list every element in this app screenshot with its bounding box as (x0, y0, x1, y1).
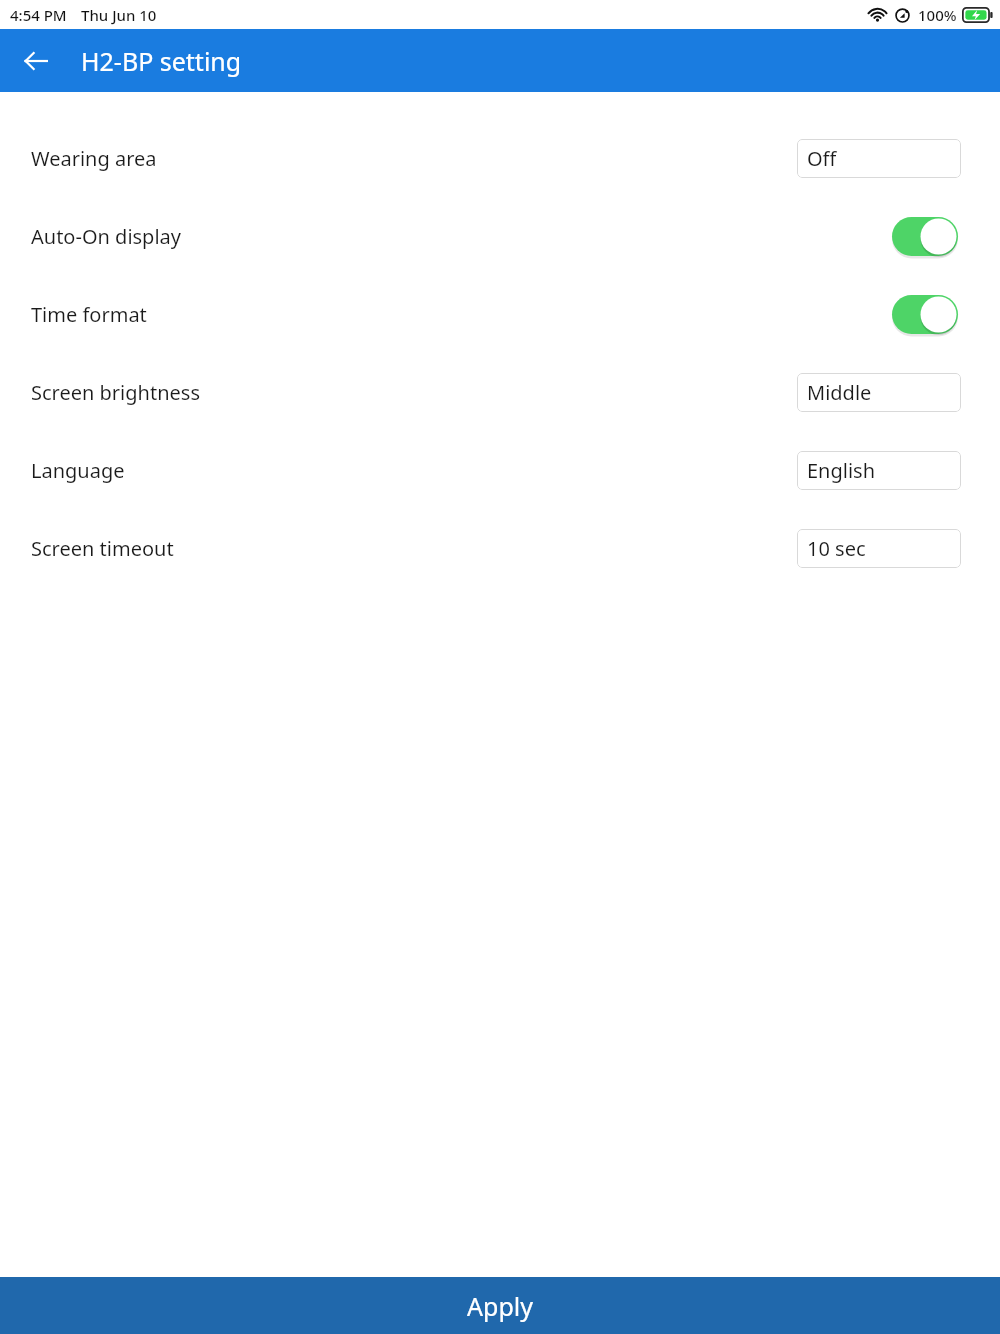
staticText: Wearing area (31, 145, 157, 172)
staticText: 4:54 PM (10, 5, 67, 25)
button[interactable]: Middle (797, 373, 961, 412)
button[interactable]: Off (797, 139, 961, 178)
staticText: H2-BP setting (81, 44, 242, 78)
button[interactable]: Screen brightness (0, 353, 1000, 431)
staticText: Off (807, 145, 837, 172)
staticText: Language (31, 457, 125, 484)
button[interactable]: Apply (0, 1277, 1000, 1334)
button[interactable]: Time format toggle, on (892, 295, 958, 334)
staticText: Middle (807, 379, 872, 406)
staticText: Apply (467, 1289, 533, 1323)
button[interactable]: Wearing area (0, 119, 1000, 197)
button[interactable]: Language (0, 431, 1000, 509)
staticText: Time format (31, 301, 147, 328)
staticText: Auto-On display (31, 223, 181, 250)
button[interactable]: Auto-On display (0, 197, 1000, 275)
staticText: Screen brightness (31, 379, 200, 406)
button[interactable]: English (797, 451, 961, 490)
button[interactable]: Auto-On display toggle, on (892, 217, 958, 256)
staticText: Screen timeout (31, 535, 174, 562)
button[interactable]: Time format (0, 275, 1000, 353)
staticText: 10 sec (807, 535, 866, 562)
staticText: English (807, 457, 876, 484)
button[interactable]: Screen timeout (0, 509, 1000, 587)
staticText: 100% (918, 5, 957, 25)
staticText: Thu Jun 10 (81, 5, 157, 25)
button[interactable]: 10 sec (797, 529, 961, 568)
button[interactable]: Back (14, 39, 58, 83)
